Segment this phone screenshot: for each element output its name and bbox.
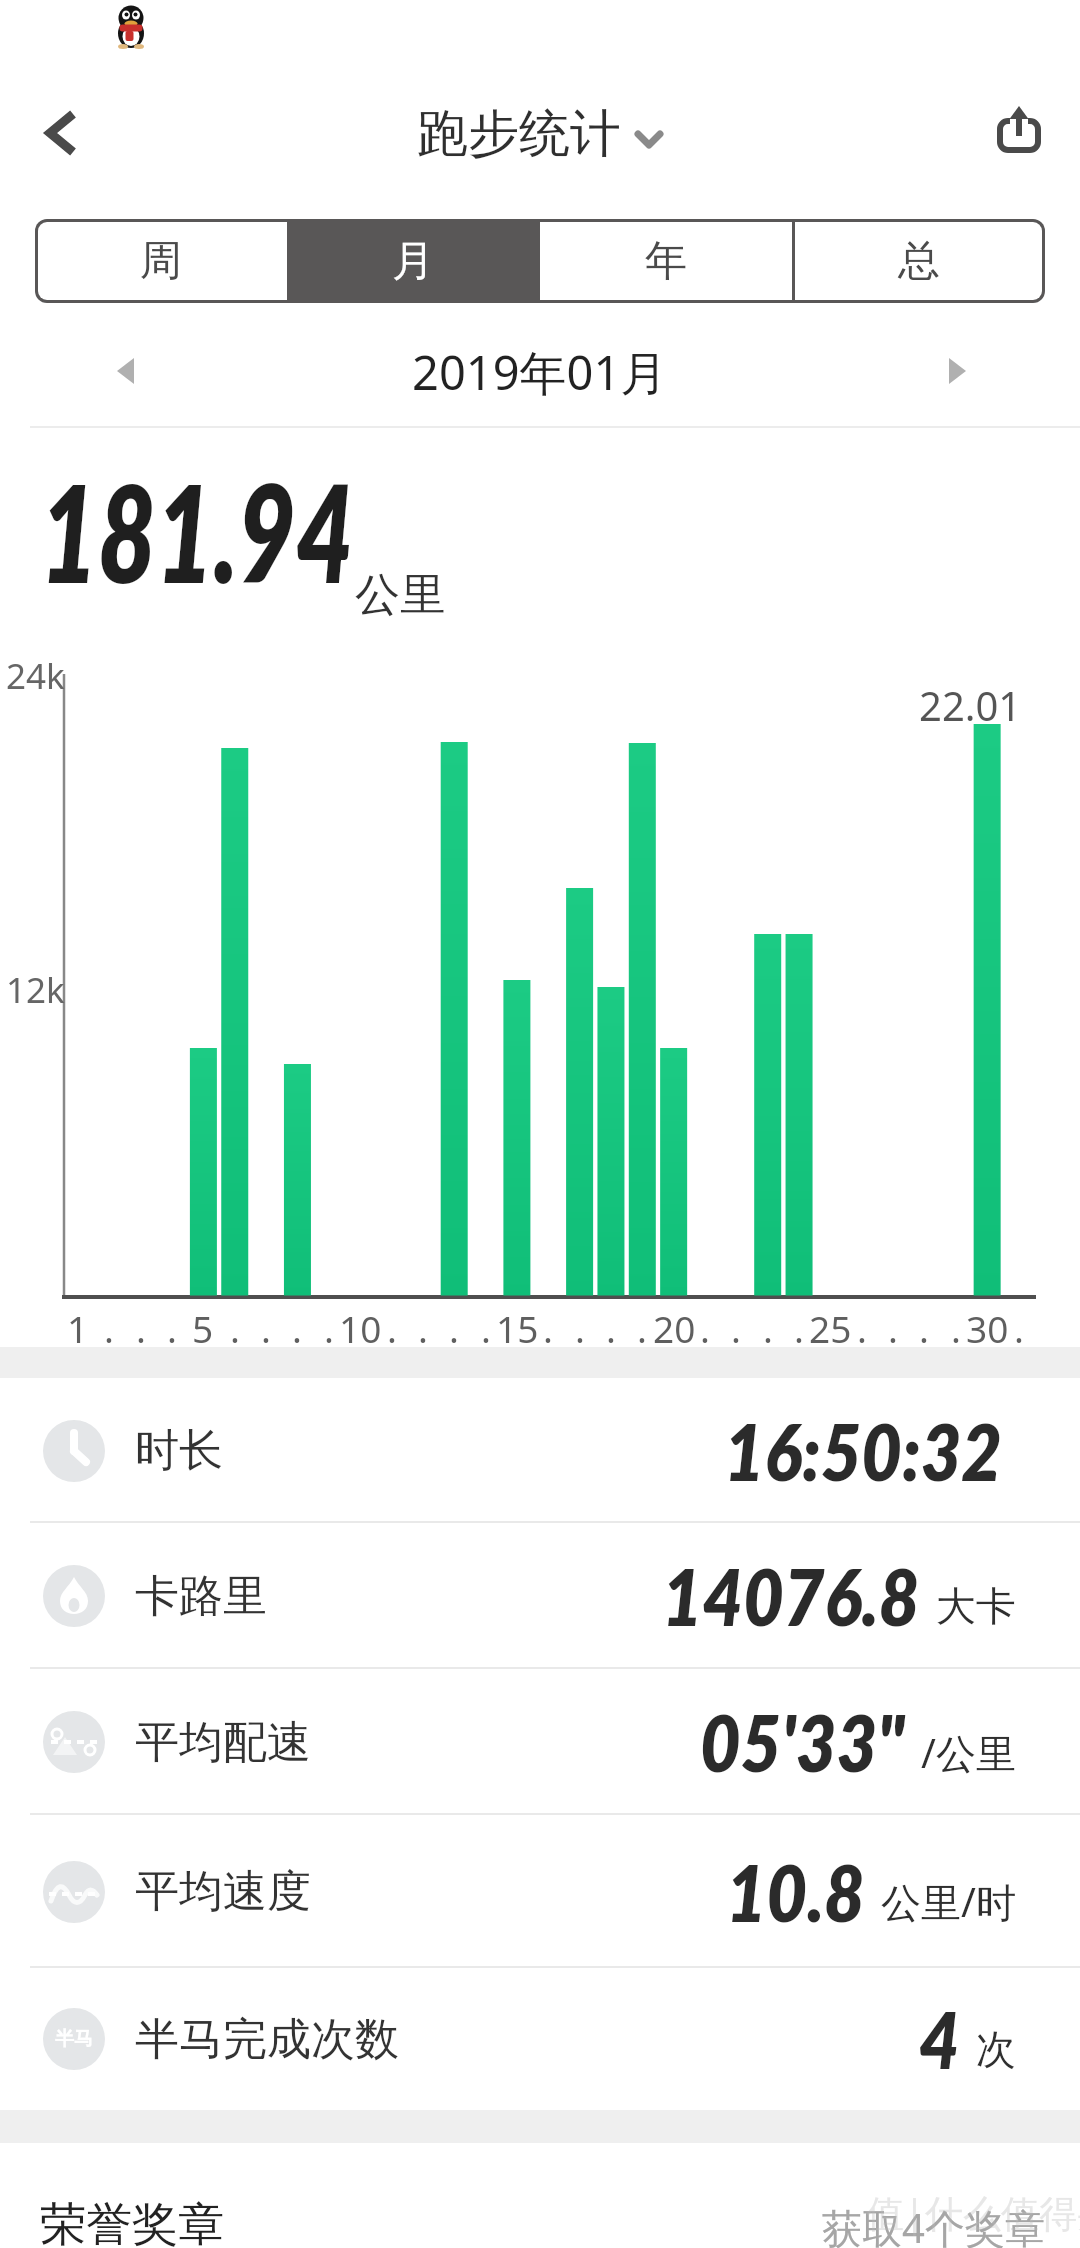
- staticText: .: [919, 1303, 929, 1353]
- staticText: 平均速度: [135, 1864, 311, 1919]
- staticText: 181.94: [40, 449, 354, 612]
- staticText: 05'33": [700, 1695, 905, 1789]
- staticText: .: [136, 1303, 146, 1353]
- staticText: .: [230, 1303, 240, 1353]
- staticText: 平均配速: [135, 1715, 311, 1770]
- staticText: /公里: [921, 1725, 1016, 1780]
- staticText: 公里/时: [881, 1874, 1016, 1929]
- staticText: .: [1014, 1303, 1024, 1353]
- staticText: 10.8: [726, 1845, 865, 1939]
- staticText: 卡路里: [135, 1569, 267, 1624]
- staticText: .: [794, 1303, 804, 1353]
- button[interactable]: [100, 348, 150, 394]
- staticText: .: [857, 1303, 867, 1353]
- staticText: .: [418, 1303, 428, 1353]
- staticText: 获取4个奖章: [822, 2200, 1045, 2248]
- staticText: 时长: [135, 1423, 223, 1478]
- staticText: 1: [67, 1303, 89, 1353]
- staticText: 30: [966, 1303, 1009, 1353]
- button[interactable]: 卡路里: [0, 1523, 1080, 1669]
- staticText: 16:50:32: [724, 1404, 1002, 1498]
- staticText: .: [167, 1303, 177, 1353]
- staticText: 公里: [355, 567, 445, 624]
- staticText: .: [481, 1303, 491, 1353]
- staticText: .: [324, 1303, 334, 1353]
- staticText: .: [951, 1303, 961, 1353]
- staticText: .: [292, 1303, 302, 1353]
- staticText: 15: [496, 1303, 539, 1353]
- staticText: 荣誉奖章: [40, 2196, 224, 2248]
- staticText: 22.01: [919, 678, 1022, 732]
- staticText: 周: [140, 235, 182, 288]
- staticText: 10: [339, 1303, 382, 1353]
- staticText: 20: [653, 1303, 696, 1353]
- staticText: 5: [192, 1303, 214, 1353]
- staticText: 总: [898, 235, 940, 288]
- staticText: .: [637, 1303, 647, 1353]
- staticText: .: [606, 1303, 616, 1353]
- staticText: 24k: [6, 652, 65, 700]
- staticText: .: [387, 1303, 397, 1353]
- staticText: .: [575, 1303, 585, 1353]
- staticText: .: [543, 1303, 553, 1353]
- staticText: 月: [392, 235, 434, 288]
- staticText: .: [763, 1303, 773, 1353]
- staticText: 半马: [55, 2027, 93, 2051]
- staticText: .: [104, 1303, 114, 1353]
- button[interactable]: [994, 104, 1046, 156]
- staticText: 大卡: [936, 1581, 1016, 1631]
- staticText: .: [888, 1303, 898, 1353]
- staticText: 半马完成次数: [135, 2012, 399, 2067]
- button[interactable]: 月: [287, 219, 539, 303]
- staticText: 2019年01月: [412, 340, 668, 400]
- staticText: .: [449, 1303, 459, 1353]
- button[interactable]: 总: [792, 219, 1045, 303]
- staticText: 年: [645, 235, 687, 288]
- button[interactable]: [932, 348, 982, 394]
- staticText: .: [700, 1303, 710, 1353]
- staticText: 次: [976, 2024, 1016, 2074]
- staticText: 14076.8: [662, 1549, 920, 1643]
- staticText: 4: [919, 1992, 960, 2086]
- button[interactable]: 跑步统计: [417, 102, 663, 166]
- staticText: 跑步统计: [417, 102, 621, 166]
- button[interactable]: [40, 108, 92, 158]
- button[interactable]: 年: [539, 219, 792, 303]
- button[interactable]: 获取4个奖章: [0, 2200, 1045, 2248]
- button[interactable]: 周: [35, 219, 287, 303]
- staticText: .: [731, 1303, 741, 1353]
- button[interactable]: 时长: [0, 1378, 1080, 1523]
- button[interactable]: 平均配速: [0, 1669, 1080, 1815]
- button[interactable]: 平均速度: [0, 1815, 1080, 1968]
- staticText: 12k: [6, 966, 65, 1014]
- staticText: .: [261, 1303, 271, 1353]
- staticText: 值|什么值得买: [866, 2186, 1080, 2238]
- button[interactable]: 半马: [0, 1968, 1080, 2110]
- staticText: 25: [809, 1303, 852, 1353]
